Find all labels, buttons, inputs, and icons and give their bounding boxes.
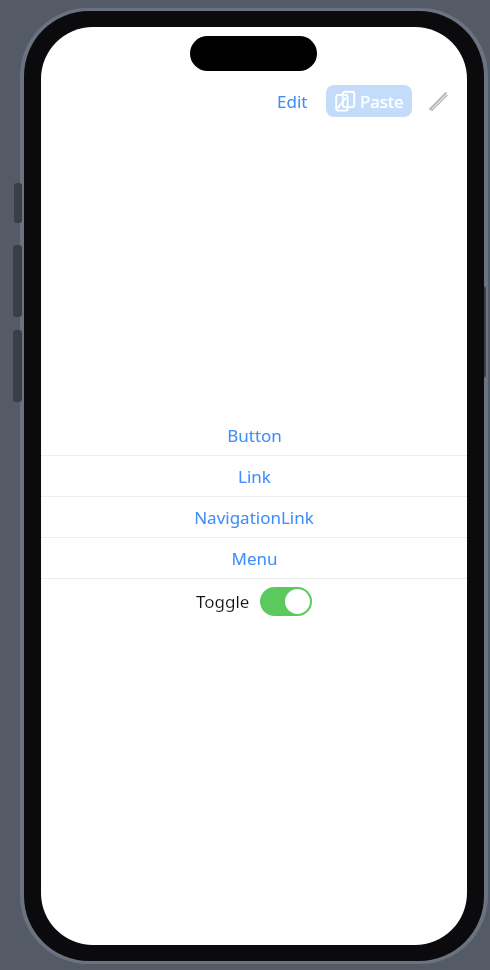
staticText: NavigationLink — [194, 506, 314, 529]
button[interactable]: Edit — [271, 86, 314, 117]
button[interactable]: Menu — [41, 538, 467, 578]
staticText: Button — [227, 424, 282, 447]
staticText: Menu — [231, 547, 278, 570]
staticText: Paste — [360, 90, 404, 113]
staticText: Toggle — [196, 590, 250, 613]
button[interactable]: Link — [41, 456, 467, 496]
button[interactable]: Toggle — [41, 579, 467, 623]
button[interactable]: Paste — [326, 85, 412, 117]
button[interactable]: Button — [41, 415, 467, 455]
button[interactable]: Toggle switch, on — [260, 587, 312, 616]
button[interactable]: NavigationLink — [41, 497, 467, 537]
staticText: Link — [238, 465, 271, 488]
staticText: Edit — [277, 90, 308, 113]
button[interactable]: Draw — [421, 84, 455, 118]
